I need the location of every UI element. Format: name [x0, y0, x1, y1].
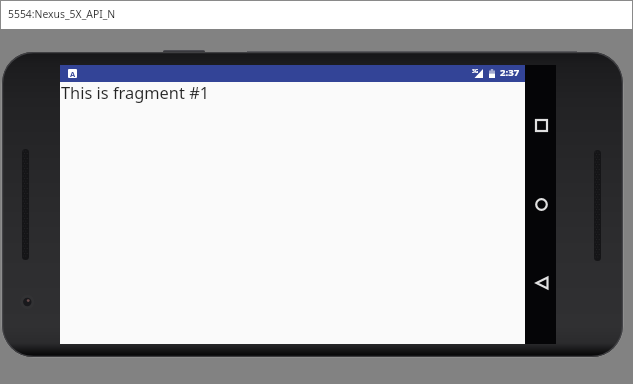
staticText: 2:37 — [500, 66, 520, 79]
staticText: This is fragment #1 — [61, 81, 210, 103]
button[interactable]: Back — [535, 276, 549, 290]
staticText: 5554:Nexus_5X_API_N — [8, 7, 116, 21]
staticText: A — [70, 69, 76, 78]
button[interactable]: Home — [535, 198, 548, 211]
staticText: 3G — [472, 68, 479, 75]
button[interactable]: Recent apps — [535, 119, 548, 132]
